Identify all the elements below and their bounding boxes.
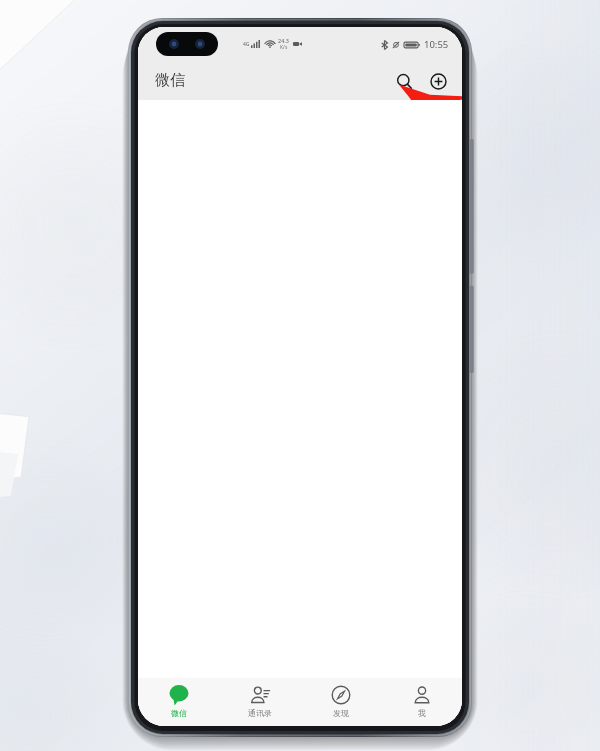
- button[interactable]: Add: [422, 65, 454, 97]
- staticText: 发现: [333, 708, 349, 718]
- button[interactable]: 我: [381, 678, 462, 726]
- button[interactable]: 发现: [300, 678, 381, 726]
- staticText: 4G: [243, 41, 250, 48]
- staticText: 通讯录: [248, 708, 272, 718]
- staticText: K/s: [280, 44, 288, 51]
- staticText: 24.3: [278, 37, 289, 44]
- button[interactable]: Search: [388, 65, 420, 97]
- staticText: 微信: [155, 71, 185, 90]
- button[interactable]: 微信: [138, 678, 219, 726]
- staticText: 微信: [171, 708, 187, 718]
- staticText: 10:55: [424, 38, 449, 51]
- staticText: 我: [418, 708, 426, 718]
- button[interactable]: 通讯录: [219, 678, 300, 726]
